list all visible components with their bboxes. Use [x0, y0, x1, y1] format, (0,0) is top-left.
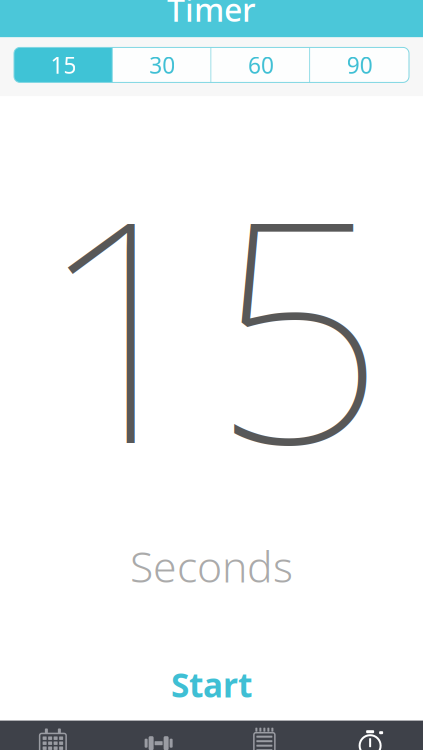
staticText: Seconds — [130, 538, 293, 594]
button[interactable]: Start — [147, 656, 276, 713]
button[interactable]: 90 — [310, 47, 409, 82]
staticText: Timer — [167, 0, 256, 31]
button[interactable]: Muscles — [106, 721, 212, 750]
button[interactable]: Log — [0, 721, 106, 750]
staticText: 30 — [149, 50, 175, 80]
button[interactable]: 15 — [14, 47, 113, 82]
staticText: 90 — [347, 50, 373, 80]
staticText: 15 — [50, 50, 76, 80]
button[interactable]: Timer — [317, 721, 423, 750]
staticText: Start — [171, 662, 252, 707]
staticText: 15 — [36, 120, 386, 528]
button[interactable]: Routines — [211, 721, 317, 750]
button[interactable]: 60 — [211, 47, 310, 82]
button[interactable]: 30 — [113, 47, 212, 82]
staticText: 60 — [248, 50, 274, 80]
